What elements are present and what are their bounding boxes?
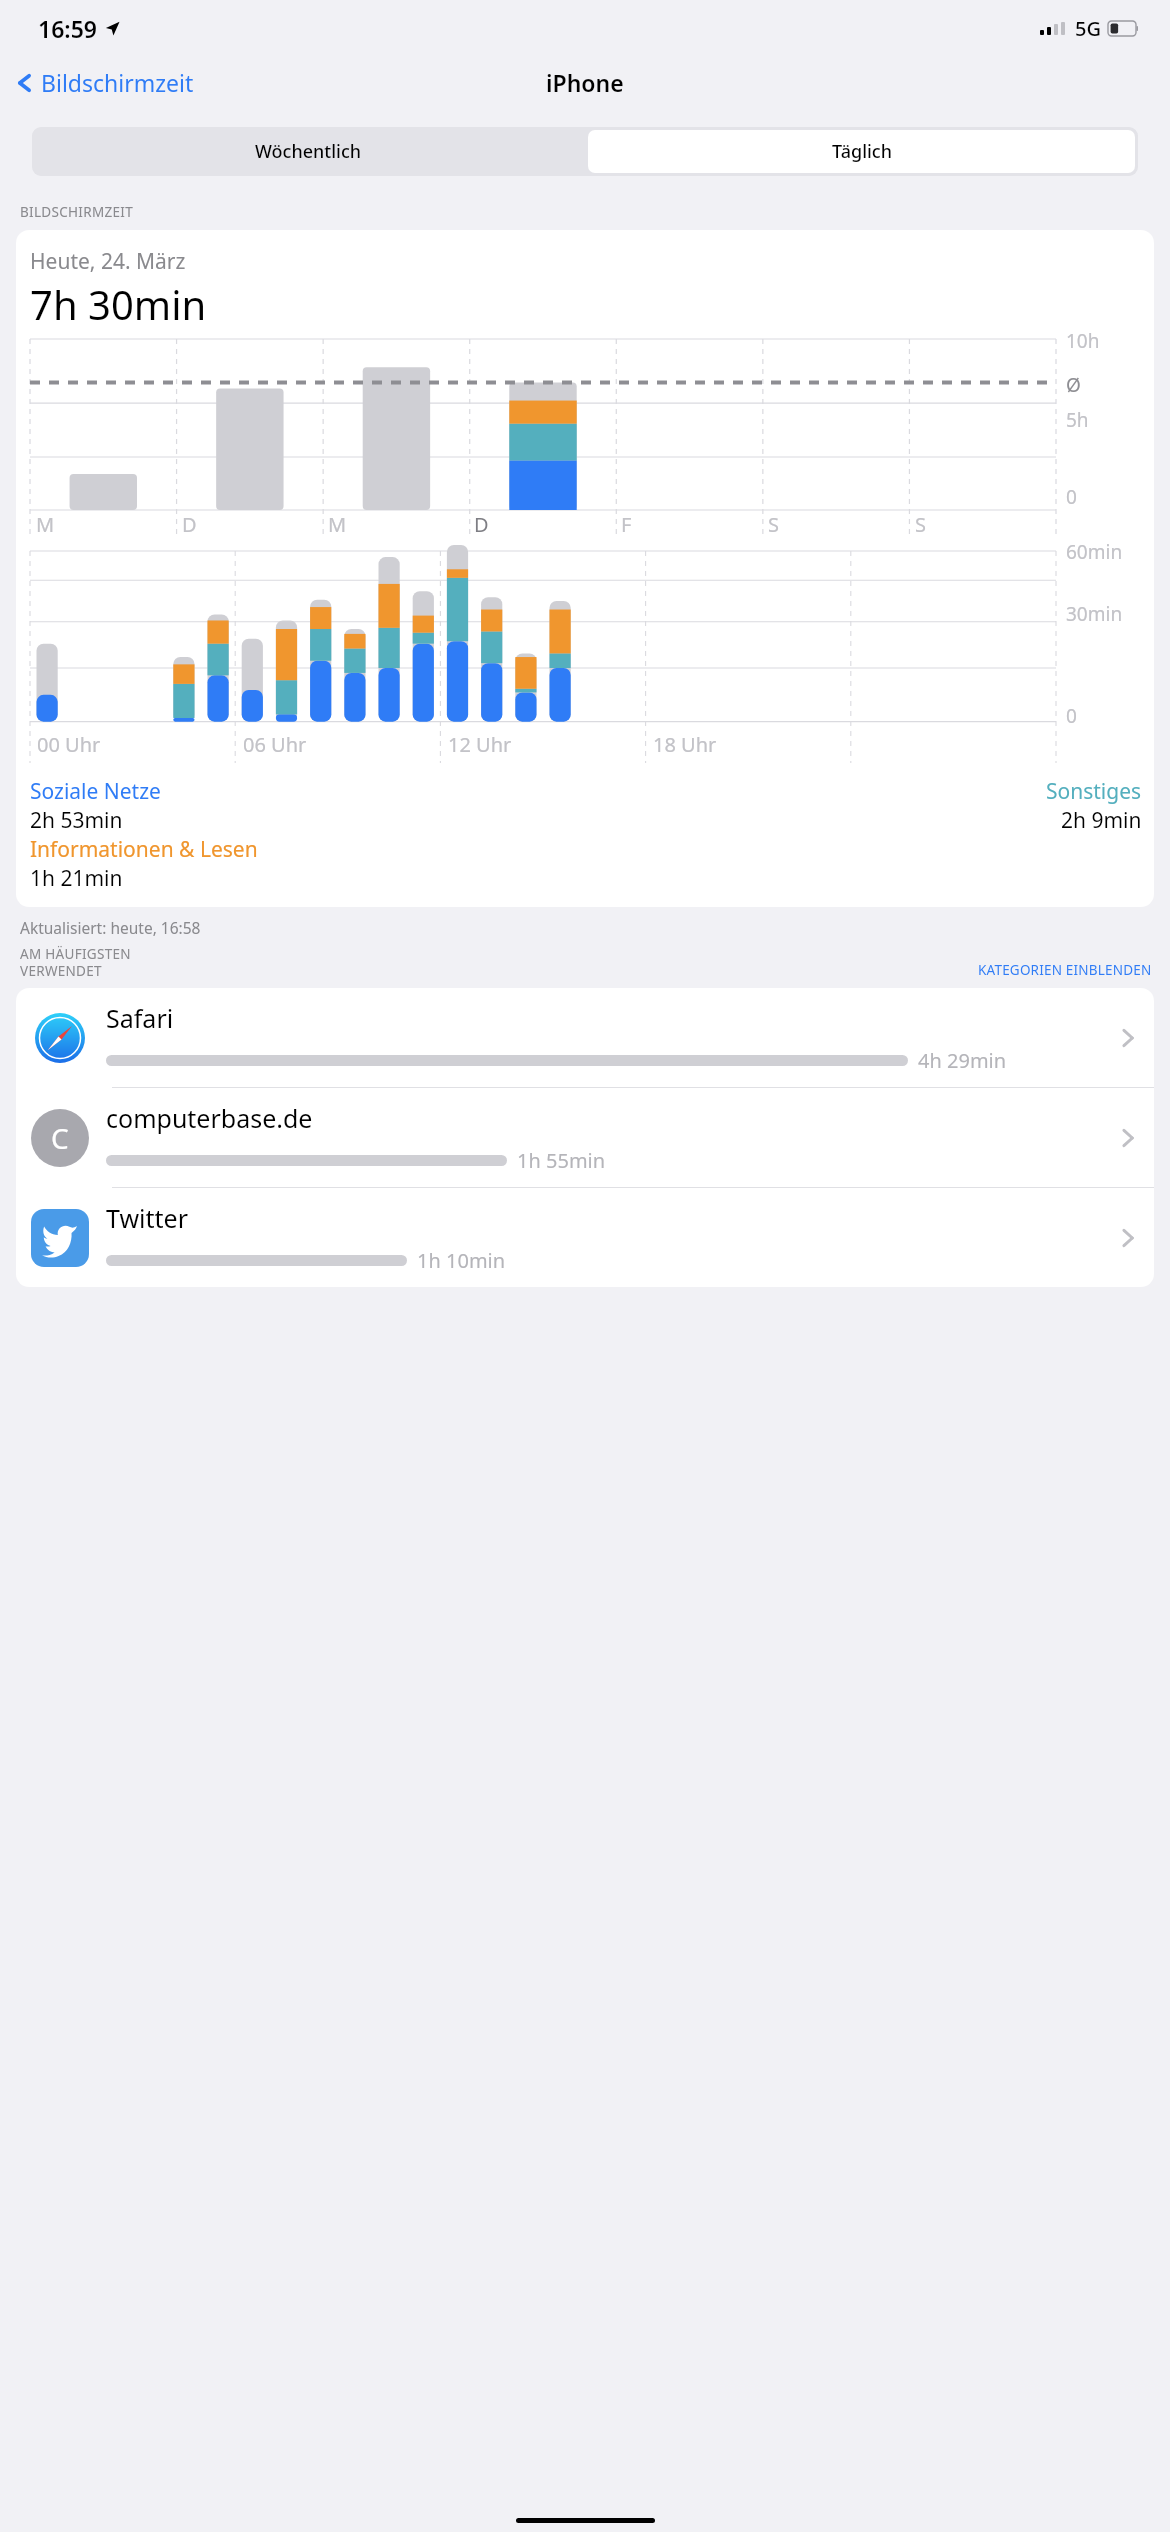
staticText: AM HÄUFIGSTEN VERWENDET xyxy=(20,945,131,980)
staticText: 30min xyxy=(1066,601,1123,627)
staticText: 1h 55min xyxy=(517,1147,606,1174)
button[interactable]: Safari xyxy=(16,988,1154,1087)
staticText: Täglich xyxy=(832,139,892,164)
staticText: 60min xyxy=(1066,539,1123,565)
staticText: Sonstiges xyxy=(1046,777,1142,806)
button[interactable]: KATEGORIEN EINBLENDEN xyxy=(978,961,1152,980)
staticText: S xyxy=(915,511,926,538)
staticText: M xyxy=(328,511,347,538)
staticText: Informationen & Lesen xyxy=(30,835,258,864)
staticText: 00 Uhr xyxy=(37,731,101,758)
button[interactable]: C xyxy=(16,1088,1154,1187)
staticText: Ø xyxy=(1066,372,1081,398)
staticText: KATEGORIEN EINBLENDEN xyxy=(978,961,1152,979)
staticText: F xyxy=(621,511,632,538)
staticText: 2h 53min xyxy=(30,806,123,835)
staticText: 0 xyxy=(1066,703,1077,729)
staticText: iPhone xyxy=(546,67,624,98)
staticText: C xyxy=(51,1119,69,1157)
button[interactable]: Täglich xyxy=(588,130,1135,173)
staticText: 0 xyxy=(1066,484,1077,510)
staticText: 2h 9min xyxy=(1061,806,1142,835)
staticText: 7h 30min xyxy=(30,277,207,331)
staticText: 5h xyxy=(1066,407,1089,433)
staticText: Bildschirmzeit xyxy=(41,67,194,98)
staticText: Soziale Netze xyxy=(30,777,161,806)
button[interactable]: Wöchentlich xyxy=(32,127,585,176)
button[interactable]: Twitter xyxy=(16,1188,1154,1287)
staticText: Wöchentlich xyxy=(255,139,362,164)
staticText: 16:59 xyxy=(38,13,97,44)
staticText: 1h 10min xyxy=(417,1247,506,1274)
staticText: 4h 29min xyxy=(918,1047,1007,1074)
staticText: Heute, 24. März xyxy=(30,247,186,276)
staticText: 12 Uhr xyxy=(448,731,512,758)
staticText: 5G xyxy=(1075,15,1101,42)
staticText: S xyxy=(768,511,779,538)
staticText: Aktualisiert: heute, 16:58 xyxy=(20,917,201,938)
staticText: Safari xyxy=(106,1001,174,1035)
other: Details xyxy=(1116,1126,1140,1150)
staticText: 06 Uhr xyxy=(243,731,307,758)
staticText: 18 Uhr xyxy=(653,731,717,758)
other: Details xyxy=(1116,1226,1140,1250)
staticText: D xyxy=(474,511,489,538)
staticText: D xyxy=(182,511,197,538)
other: Details xyxy=(1116,1026,1140,1050)
staticText: 10h xyxy=(1066,328,1100,354)
staticText: computerbase.de xyxy=(106,1101,313,1135)
staticText: M xyxy=(36,511,55,538)
button[interactable]: Bildschirmzeit xyxy=(12,67,194,98)
staticText: 1h 21min xyxy=(30,864,123,893)
staticText: Twitter xyxy=(106,1201,188,1235)
staticText: BILDSCHIRMZEIT xyxy=(20,203,133,221)
